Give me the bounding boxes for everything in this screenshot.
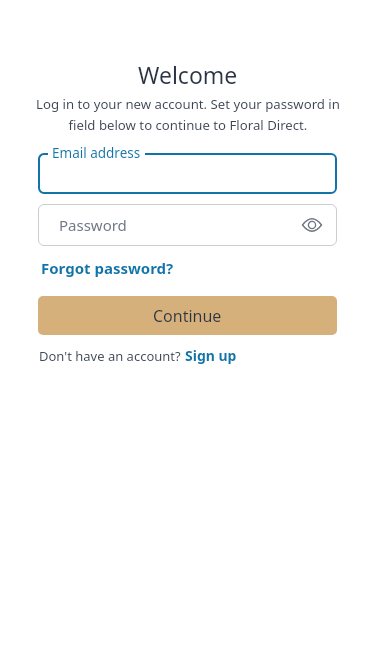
staticText: Welcome	[138, 59, 238, 90]
staticText: Log in to your new account. Set your pas…	[36, 95, 340, 134]
button[interactable]: Sign up	[185, 346, 237, 365]
button[interactable]: Forgot password?	[41, 258, 174, 278]
staticText: Don't have an account?	[39, 347, 181, 365]
button[interactable]: Continue	[38, 296, 337, 335]
button[interactable]	[38, 153, 337, 194]
staticText: Password	[59, 215, 127, 235]
staticText: Continue	[153, 305, 222, 327]
staticText: Email address	[52, 144, 141, 162]
button[interactable]: Password	[38, 204, 337, 246]
